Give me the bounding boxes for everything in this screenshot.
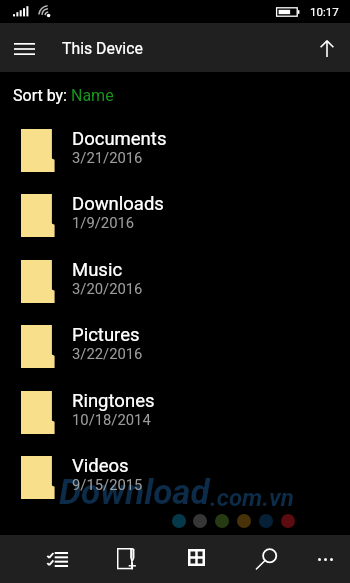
staticText: 3/22/2016	[72, 345, 143, 362]
staticText: Downloads	[72, 193, 164, 215]
staticText: Music	[72, 259, 123, 281]
button[interactable]: Select items	[22, 535, 92, 583]
button[interactable]: Name	[71, 86, 114, 105]
button[interactable]: Search	[231, 535, 301, 583]
staticText: Download	[59, 472, 210, 513]
staticText: 1/9/2016	[72, 214, 135, 231]
staticText: 3/20/2016	[72, 280, 143, 297]
staticText: 9/15/2015	[72, 476, 143, 493]
button[interactable]: New folder	[91, 535, 161, 583]
button[interactable]: Videos	[0, 445, 350, 510]
button[interactable]: Downloads	[0, 183, 350, 248]
staticText: Videos	[72, 455, 129, 477]
staticText: 10:17	[310, 5, 339, 18]
staticText: .com.vn	[210, 484, 294, 512]
button[interactable]: Up one level	[304, 25, 350, 71]
button[interactable]: Ringtones	[0, 380, 350, 445]
staticText: Ringtones	[72, 390, 155, 412]
button[interactable]: Menu	[1, 26, 47, 72]
staticText: 10/18/2014	[72, 411, 151, 428]
button[interactable]: Documents	[0, 118, 350, 183]
button[interactable]: Grid view	[161, 533, 231, 581]
staticText: Name	[71, 86, 114, 105]
button[interactable]: Music	[0, 249, 350, 314]
staticText: 3/21/2016	[72, 149, 143, 166]
button[interactable]: Pictures	[0, 314, 350, 379]
staticText: Documents	[72, 128, 167, 150]
staticText: Sort by:	[13, 86, 71, 105]
staticText: This Device	[62, 39, 143, 58]
staticText: Pictures	[72, 324, 140, 346]
button[interactable]: More options	[290, 535, 350, 583]
